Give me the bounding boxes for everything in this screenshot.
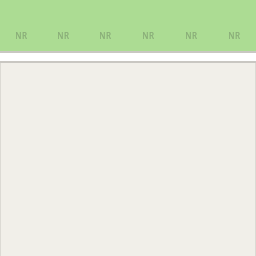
button[interactable]: NR <box>213 0 256 51</box>
button[interactable]: NR <box>0 0 42 51</box>
button[interactable]: NR <box>127 0 170 51</box>
button[interactable]: NR <box>42 0 84 51</box>
staticText: NR <box>142 30 155 41</box>
button[interactable]: NR <box>84 0 127 51</box>
staticText: NR <box>99 30 112 41</box>
staticText: NR <box>228 30 241 41</box>
staticText: NR <box>57 30 70 41</box>
staticText: NR <box>185 30 198 41</box>
staticText: NR <box>15 30 28 41</box>
button[interactable]: NR <box>170 0 213 51</box>
